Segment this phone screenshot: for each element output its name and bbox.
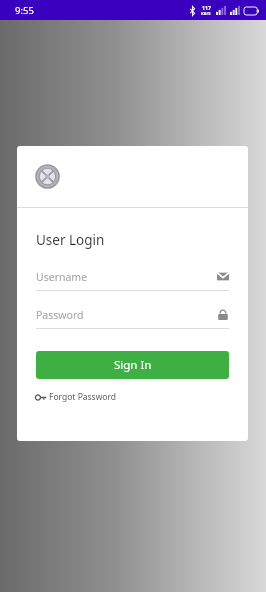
staticText: 117	[202, 4, 211, 11]
staticText: Sign In	[114, 357, 152, 373]
button[interactable]: Username	[36, 267, 229, 291]
staticText: 9:55	[15, 4, 34, 17]
staticText: Username	[36, 270, 88, 284]
button[interactable]: Password	[36, 305, 229, 329]
staticText: User Login	[36, 231, 105, 249]
staticText: Password	[36, 308, 84, 322]
button[interactable]: App logo	[36, 165, 59, 188]
button[interactable]: Forgot Password	[36, 391, 117, 403]
button[interactable]: Sign In	[36, 351, 229, 379]
staticText: Forgot Password	[49, 391, 117, 403]
staticText: KB/S	[201, 11, 211, 17]
